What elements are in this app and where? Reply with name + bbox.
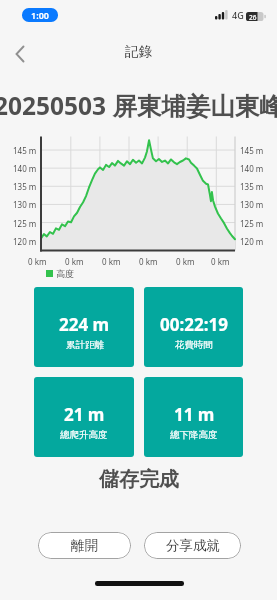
staticText: 00:22:19: [160, 313, 228, 336]
staticText: 分享成就: [166, 537, 220, 554]
button[interactable]: 21 m: [34, 377, 134, 457]
button[interactable]: 分享成就: [144, 532, 241, 559]
staticText: 0 km: [139, 256, 158, 267]
staticText: 花費時間: [175, 339, 213, 351]
button[interactable]: 00:22:19: [144, 287, 243, 367]
staticText: 累計距離: [66, 339, 104, 351]
staticText: 0 km: [28, 256, 47, 267]
staticText: 120 m: [13, 236, 37, 247]
staticText: 135 m: [13, 181, 37, 192]
staticText: 125 m: [240, 218, 264, 229]
staticText: 140 m: [240, 163, 264, 174]
staticText: 0 km: [65, 256, 84, 267]
staticText: 130 m: [13, 199, 37, 210]
staticText: 26: [249, 13, 257, 22]
staticText: 離開: [71, 537, 98, 554]
button[interactable]: 離開: [38, 532, 131, 559]
button[interactable]: 224 m: [34, 287, 134, 367]
staticText: 總爬升高度: [60, 429, 108, 441]
staticText: 4G: [232, 9, 244, 21]
staticText: 記錄: [125, 43, 152, 60]
staticText: 0 km: [176, 256, 195, 267]
staticText: 11 m: [174, 403, 215, 426]
staticText: 21 m: [64, 403, 105, 426]
staticText: 高度: [56, 268, 74, 279]
staticText: 0 km: [211, 256, 230, 267]
staticText: 1:00: [31, 9, 49, 21]
button[interactable]: 11 m: [144, 377, 243, 457]
staticText: 145 m: [240, 145, 264, 156]
staticText: 125 m: [13, 218, 37, 229]
button[interactable]: 1:00: [22, 8, 58, 22]
staticText: 120 m: [240, 236, 264, 247]
button[interactable]: [8, 42, 32, 66]
staticText: 20250503 屏東埔姜山東峰: [0, 89, 277, 122]
staticText: 135 m: [240, 181, 264, 192]
staticText: 總下降高度: [170, 429, 218, 441]
staticText: 儲存完成: [99, 467, 179, 492]
staticText: 224 m: [59, 313, 110, 336]
staticText: 145 m: [13, 145, 37, 156]
staticText: 140 m: [13, 163, 37, 174]
staticText: 0 km: [102, 256, 121, 267]
staticText: 130 m: [240, 199, 264, 210]
